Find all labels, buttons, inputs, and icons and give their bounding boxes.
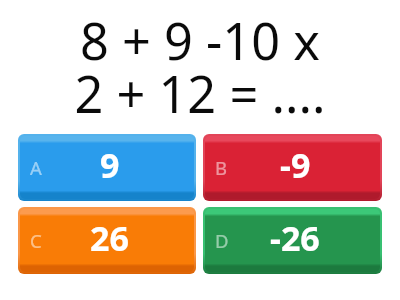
button[interactable]: D xyxy=(203,207,382,274)
button[interactable]: C xyxy=(18,207,196,274)
staticText: A xyxy=(30,155,42,180)
staticText: D xyxy=(215,228,229,253)
staticText: 9 xyxy=(100,142,120,188)
staticText: -9 xyxy=(280,142,311,188)
staticText: 26 xyxy=(90,215,129,261)
button[interactable]: A xyxy=(18,134,196,201)
staticText: B xyxy=(215,155,228,180)
staticText: 8 + 9 -10 x 2 + 12 = .... xyxy=(0,6,400,127)
staticText: C xyxy=(30,228,42,253)
staticText: -26 xyxy=(270,215,320,261)
button[interactable]: B xyxy=(203,134,382,201)
